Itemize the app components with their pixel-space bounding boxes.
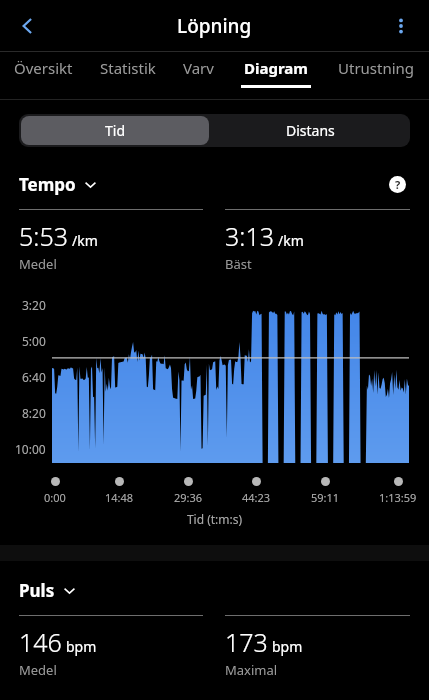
staticText: Tid (t:m:s): [0, 511, 429, 527]
button[interactable]: Utrustning: [334, 52, 419, 94]
staticText: Maximal: [225, 661, 278, 679]
staticText: 0:00: [44, 490, 66, 505]
staticText: Distans: [286, 121, 335, 140]
staticText: 5:00: [22, 333, 46, 349]
button[interactable]: Diagram: [237, 52, 315, 94]
staticText: Tid: [105, 121, 126, 140]
staticText: ?: [395, 177, 401, 192]
staticText: Bäst: [225, 255, 252, 273]
staticText: 1:13:59: [379, 490, 417, 505]
staticText: 44:23: [242, 490, 271, 505]
staticText: 10:00: [15, 441, 46, 457]
staticText: 173: [225, 625, 268, 659]
button[interactable]: Tempo: [19, 173, 97, 196]
button[interactable]: 5:53: [19, 209, 203, 273]
staticText: Medel: [19, 255, 57, 273]
staticText: Statistik: [100, 58, 156, 78]
button[interactable]: Statistik: [96, 52, 160, 94]
button[interactable]: Översikt: [10, 52, 77, 94]
button[interactable]: Back: [6, 4, 50, 48]
staticText: Utrustning: [338, 58, 415, 78]
button[interactable]: Tid: [21, 116, 209, 145]
staticText: 3:13: [225, 219, 274, 253]
button[interactable]: Puls: [19, 579, 76, 602]
button[interactable]: 3:13: [225, 209, 410, 273]
staticText: Tempo: [19, 173, 76, 196]
staticText: 5:53: [19, 219, 68, 253]
button[interactable]: Varv: [179, 52, 218, 94]
staticText: 14:48: [105, 490, 134, 505]
staticText: 3:20: [22, 297, 46, 313]
staticText: Medel: [19, 661, 57, 679]
button[interactable]: 173: [225, 615, 410, 679]
button[interactable]: More options: [379, 4, 423, 48]
button[interactable]: Distans: [211, 114, 410, 147]
staticText: Varv: [183, 58, 214, 78]
button[interactable]: 146: [19, 615, 203, 679]
staticText: 59:11: [311, 490, 340, 505]
staticText: bpm: [272, 637, 303, 656]
staticText: 146: [19, 625, 62, 659]
staticText: 6:40: [22, 369, 46, 385]
staticText: 8:20: [22, 405, 46, 421]
staticText: Löpning: [177, 13, 252, 39]
staticText: Diagram: [244, 58, 308, 78]
staticText: bpm: [66, 637, 97, 656]
staticText: 29:36: [174, 490, 203, 505]
staticText: /km: [278, 231, 304, 250]
staticText: Puls: [19, 579, 55, 602]
staticText: Översikt: [14, 58, 73, 78]
staticText: /km: [72, 231, 98, 250]
button[interactable]: Help: [384, 171, 410, 197]
